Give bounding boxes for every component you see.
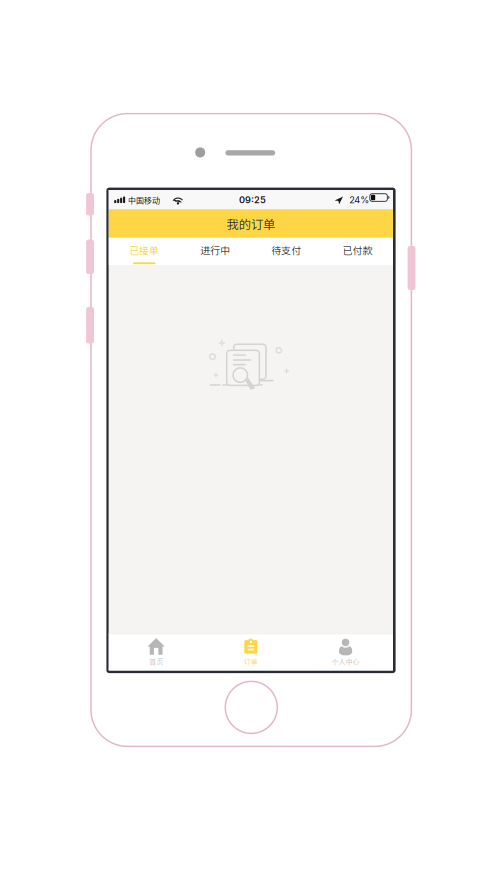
staticText: 待支付 xyxy=(271,243,301,257)
button[interactable]: 已付款 xyxy=(0,0,497,883)
staticText: 已接单 xyxy=(129,243,159,257)
button[interactable]: 待支付 xyxy=(0,0,497,883)
button[interactable]: 进行中 xyxy=(0,0,497,883)
staticText: 已付款 xyxy=(342,243,372,257)
staticText: 09:25 xyxy=(239,194,266,205)
staticText: 24% xyxy=(349,194,369,205)
staticText: 中国移动 xyxy=(128,194,160,206)
staticText: 个人中心 xyxy=(331,656,359,666)
staticText: 进行中 xyxy=(200,243,230,257)
button[interactable]: 已接单 xyxy=(0,0,497,883)
staticText: 我的订单 xyxy=(227,215,275,233)
button[interactable]: 首页 xyxy=(0,0,497,883)
button[interactable]: 个人中心 xyxy=(0,0,497,883)
staticText: 首页 xyxy=(149,656,163,666)
button[interactable]: 订单 xyxy=(0,0,497,883)
staticText: 订单 xyxy=(244,656,258,666)
